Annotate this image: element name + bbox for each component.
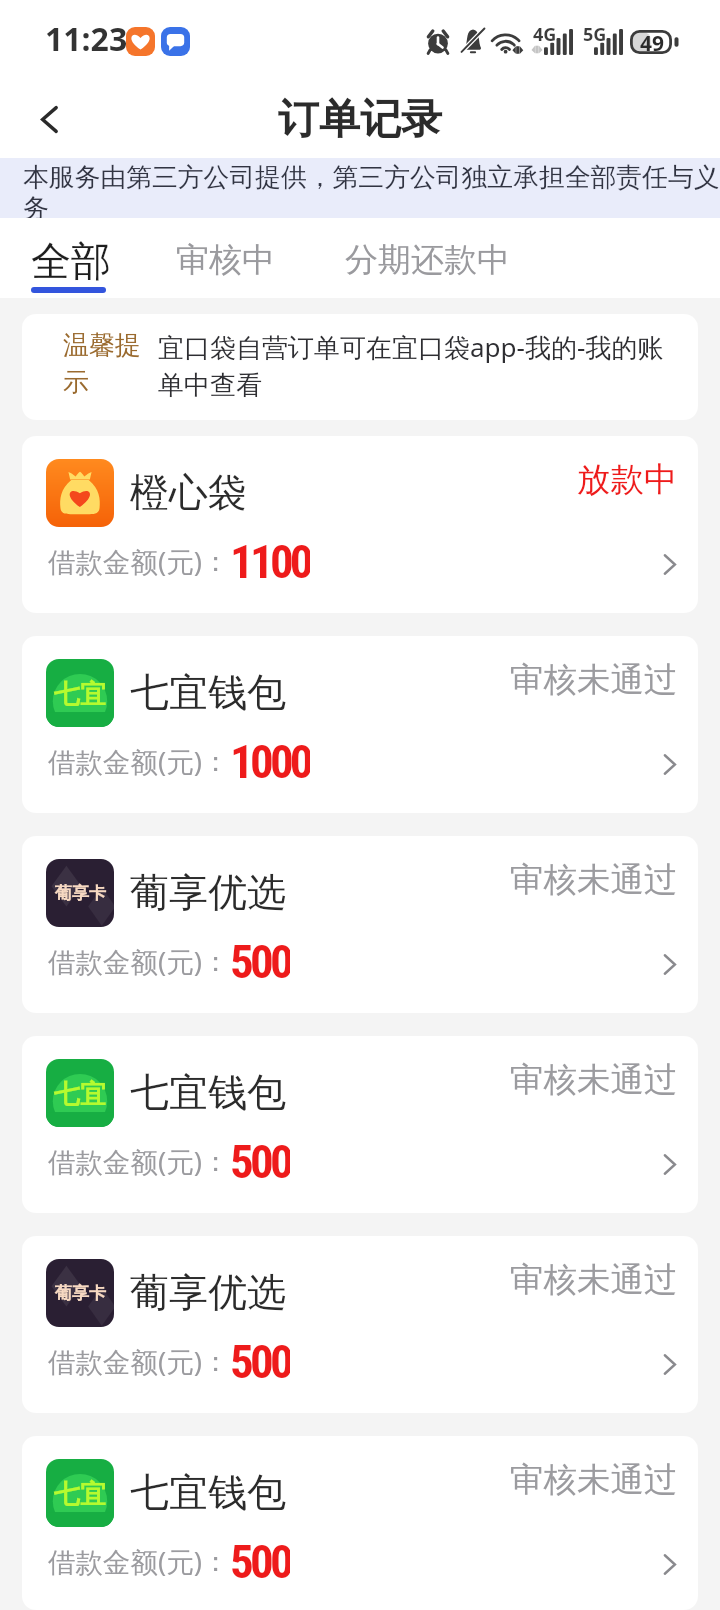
staticText: 宜口袋自营订单可在宜口袋app-我的-我的账单中查看 <box>158 329 678 401</box>
button[interactable]: 葡享卡 <box>22 836 698 1013</box>
staticText: 七宜钱包 <box>130 1468 286 1517</box>
staticText: 葡享卡 <box>55 1283 106 1304</box>
staticText: 借款金额(元) <box>48 943 202 981</box>
staticText: 1000 <box>230 734 310 784</box>
button[interactable]: 审核中 <box>155 218 296 298</box>
staticText: 七宜 <box>54 678 106 711</box>
staticText: 审核中 <box>176 239 275 281</box>
staticText: 500 <box>230 1534 290 1584</box>
staticText: ： <box>202 945 230 980</box>
staticText: 4G <box>533 22 557 47</box>
staticText: 七宜钱包 <box>130 1068 286 1117</box>
button[interactable]: 七宜 <box>22 1436 698 1610</box>
staticText: 本服务由第三方公司提供，第三方公司独立承担全部责任与义务 <box>23 161 720 221</box>
staticText: 借款金额(元) <box>48 543 202 581</box>
staticText: 借款金额(元) <box>48 1543 202 1581</box>
button[interactable]: 温馨提示 <box>22 314 698 420</box>
staticText: 5G <box>583 22 607 47</box>
staticText: 七宜 <box>54 1478 106 1511</box>
staticText: 审核未通过 <box>510 1059 678 1101</box>
staticText: 全部 <box>31 236 111 286</box>
button[interactable]: 七宜 <box>22 1036 698 1213</box>
staticText: 订单记录 <box>278 94 442 146</box>
staticText: 500 <box>230 1134 290 1184</box>
staticText: 审核未通过 <box>510 859 678 901</box>
staticText: ： <box>202 545 230 580</box>
button[interactable]: 橙心袋 <box>22 436 698 613</box>
staticText: 借款金额(元) <box>48 1343 202 1381</box>
staticText: 温馨提示 <box>63 329 158 398</box>
staticText: 七宜钱包 <box>130 668 286 717</box>
staticText: 借款金额(元) <box>48 1143 202 1181</box>
staticText: 橙心袋 <box>130 468 247 517</box>
button[interactable]: Back <box>0 80 88 158</box>
button[interactable]: 葡享卡 <box>22 1236 698 1413</box>
staticText: 七宜 <box>54 1078 106 1111</box>
staticText: ： <box>202 745 230 780</box>
staticText: 1100 <box>230 534 310 584</box>
staticText: ： <box>202 1545 230 1580</box>
staticText: 葡享卡 <box>55 883 106 904</box>
staticText: 分期还款中 <box>345 239 510 281</box>
staticText: ： <box>202 1345 230 1380</box>
staticText: 49 <box>640 29 665 53</box>
button[interactable]: 全部 <box>18 218 119 298</box>
staticText: ： <box>202 1145 230 1180</box>
staticText: 借款金额(元) <box>48 743 202 781</box>
staticText: 500 <box>230 1334 290 1384</box>
button[interactable]: 七宜 <box>22 636 698 813</box>
staticText: 葡享优选 <box>130 868 286 917</box>
staticText: 审核未通过 <box>510 1459 678 1501</box>
staticText: 500 <box>230 934 290 984</box>
staticText: 葡享优选 <box>130 1268 286 1317</box>
staticText: 审核未通过 <box>510 1259 678 1301</box>
staticText: 审核未通过 <box>510 659 678 701</box>
staticText: 放款中 <box>577 459 678 501</box>
button[interactable]: 分期还款中 <box>324 218 527 298</box>
staticText: 11:23 <box>45 17 128 61</box>
